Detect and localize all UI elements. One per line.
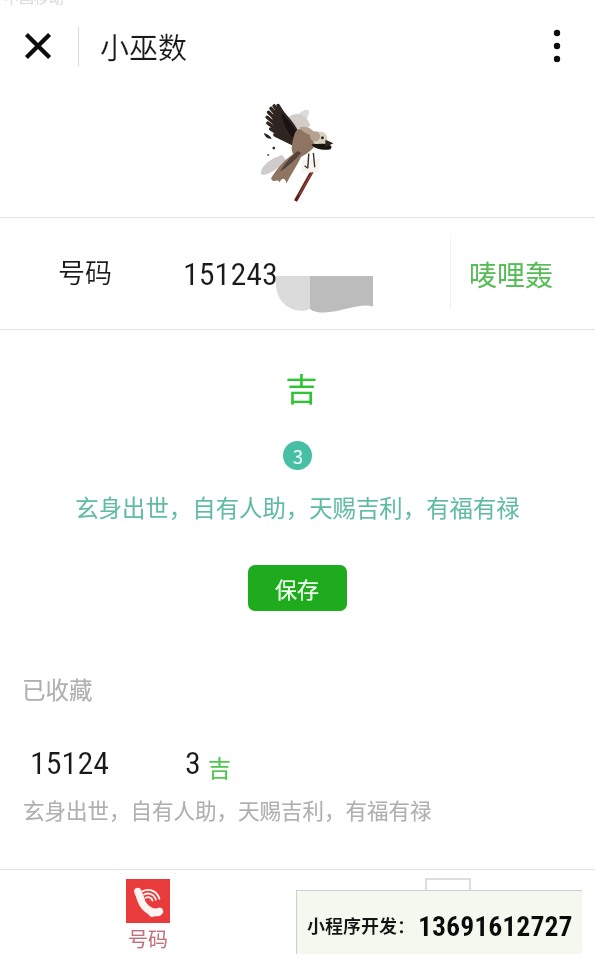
staticText: 玄身出世，自有人助，天赐吉利，有福有禄 bbox=[0, 490, 595, 524]
button[interactable]: 唛哩轰 bbox=[469, 254, 554, 295]
button[interactable]: 保存 bbox=[248, 565, 347, 611]
staticText: 吉 bbox=[4, 364, 595, 410]
staticText: 号码 bbox=[128, 924, 168, 953]
staticText: 小程序开发： bbox=[307, 912, 415, 938]
staticText: 吉 bbox=[208, 750, 231, 783]
staticText: 记录 bbox=[428, 916, 468, 945]
staticText: 号码 bbox=[58, 252, 112, 291]
button[interactable]: 号码 bbox=[106, 879, 190, 953]
button[interactable]: Close bbox=[14, 22, 62, 70]
staticText: 玄身出世，自有人助，天赐吉利，有福有禄 bbox=[23, 794, 432, 825]
button[interactable]: More options bbox=[533, 22, 581, 70]
staticText: 3 bbox=[185, 744, 201, 782]
staticText: 小巫数 bbox=[100, 25, 188, 67]
staticText: 中国移动 bbox=[4, 0, 65, 8]
staticText: 151243 bbox=[183, 255, 278, 293]
button[interactable]: 15124 bbox=[0, 735, 595, 787]
staticText: 保存 bbox=[275, 572, 320, 604]
staticText: 13691612727 bbox=[418, 910, 573, 943]
button[interactable]: 记录 bbox=[406, 871, 490, 945]
staticText: 已收藏 bbox=[22, 672, 93, 706]
staticText: 3 bbox=[293, 443, 303, 469]
staticText: 15124 bbox=[30, 744, 109, 782]
